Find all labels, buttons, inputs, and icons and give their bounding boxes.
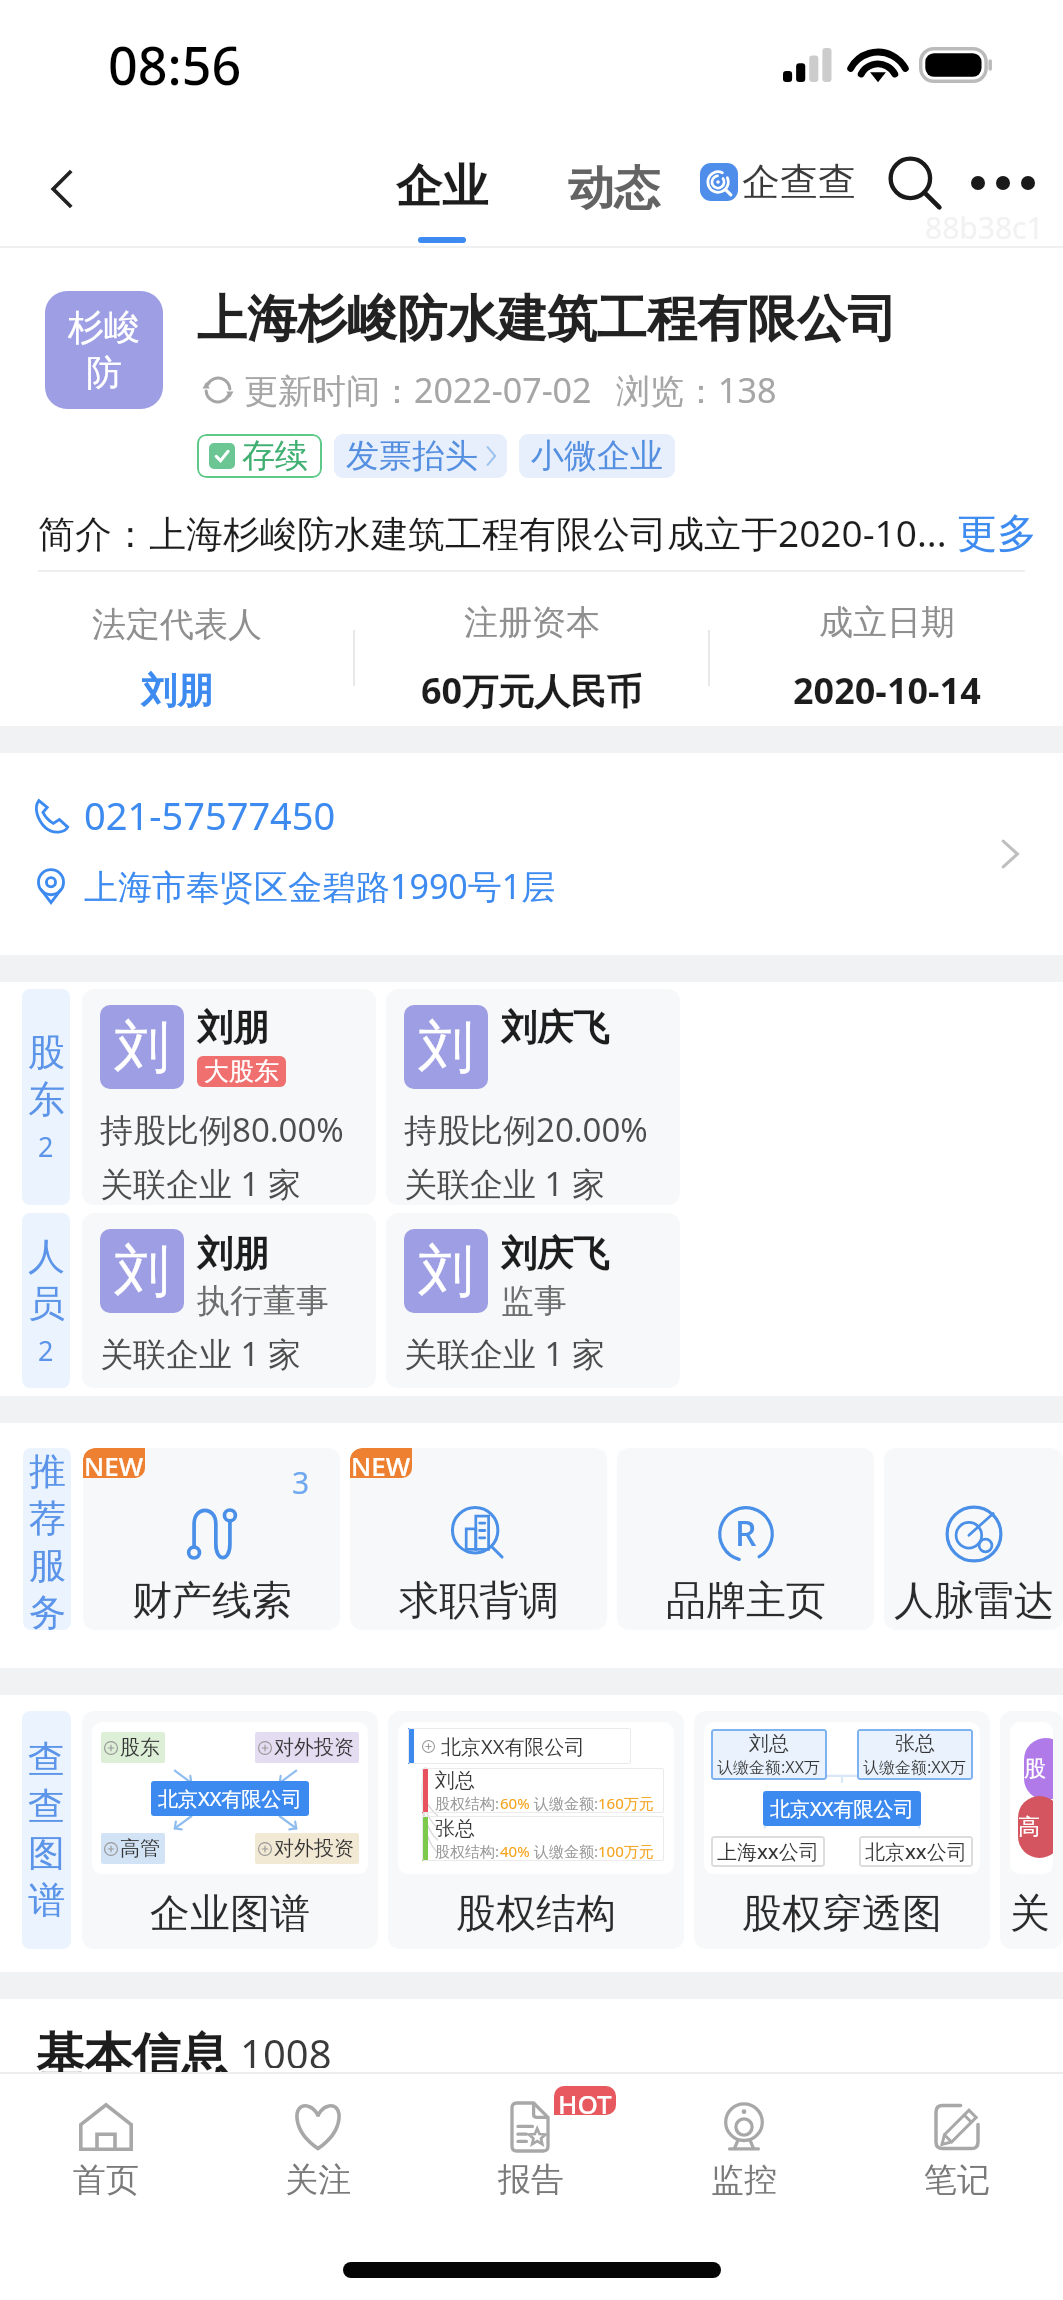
staticText: 股	[28, 1029, 65, 1076]
staticText: 更新时间：2022-07-02	[244, 367, 592, 413]
staticText: 注册资本	[464, 601, 600, 644]
staticText: 求职背调	[399, 1575, 559, 1625]
staticText: 企业	[396, 158, 488, 216]
staticText: 发票抬头	[346, 435, 478, 477]
button[interactable]: 存续	[197, 434, 322, 478]
button[interactable]: 小微企业	[519, 434, 675, 478]
staticText: 张总	[435, 1816, 475, 1841]
button[interactable]: More options	[958, 138, 1048, 228]
staticText: 服	[29, 1542, 66, 1589]
staticText: 刘庆飞	[501, 1231, 609, 1276]
staticText: 刘	[418, 1012, 474, 1083]
staticText: 对外投资	[274, 1836, 354, 1861]
staticText: 88b38c1	[925, 207, 1044, 248]
staticText: 企查查	[742, 158, 856, 206]
staticText: 160万元	[598, 1793, 654, 1813]
button[interactable]: 021-57577450	[0, 753, 1063, 955]
staticText: 2	[38, 1128, 54, 1165]
staticText: 小微企业	[531, 435, 663, 477]
staticText: 简介：上海杉峻防水建筑工程有限公司成立于2020-10...	[38, 507, 947, 558]
staticText: 股东	[1024, 1755, 1053, 1783]
staticText: 股东	[120, 1735, 160, 1760]
staticText: 对外投资	[274, 1735, 354, 1760]
staticText: 存续	[242, 435, 308, 477]
staticText: 认缴金额:XX万	[863, 1756, 967, 1778]
staticText: 3	[292, 1462, 310, 1503]
button[interactable]: 法定代表人	[0, 590, 353, 726]
staticText: 人	[28, 1233, 65, 1280]
button[interactable]: Back	[20, 147, 104, 231]
staticText: 员	[28, 1280, 65, 1327]
staticText: 刘	[114, 1236, 170, 1307]
staticText: 监控	[711, 2159, 777, 2201]
staticText: 关系图	[1010, 1888, 1053, 1938]
staticText: 大股东	[204, 1056, 279, 1087]
button[interactable]: 笔记	[850, 2074, 1063, 2232]
button[interactable]: 财产线索	[83, 1448, 340, 1630]
staticText: 刘朋	[197, 1231, 269, 1276]
staticText: 关联企业 1 家	[404, 1161, 606, 1205]
staticText: 图	[28, 1830, 65, 1877]
staticText: 高管	[1018, 1813, 1053, 1841]
button[interactable]: HOT	[424, 2074, 637, 2232]
staticText: 刘庆飞	[501, 1005, 609, 1050]
staticText: 杉峻	[68, 305, 140, 350]
staticText: 成立日期	[819, 601, 955, 644]
button[interactable]: 发票抬头	[334, 434, 507, 478]
staticText: 北京XX有限公司	[441, 1733, 585, 1760]
button[interactable]: 企查查	[700, 158, 856, 206]
staticText: 查	[28, 1783, 65, 1830]
staticText: 品牌主页	[666, 1575, 826, 1625]
staticText: NEW	[351, 1448, 411, 1478]
staticText: 2	[38, 1332, 54, 1369]
staticText: 谱	[28, 1877, 65, 1924]
staticText: 北京XX有限公司	[770, 1795, 914, 1822]
staticText: 刘总	[749, 1731, 789, 1756]
button[interactable]: 动态	[568, 160, 660, 218]
staticText: 首页	[73, 2159, 139, 2201]
staticText: 企业图谱	[150, 1888, 310, 1938]
staticText: 刘朋	[197, 1005, 269, 1050]
staticText: 关联企业 1 家	[100, 1161, 302, 1205]
button[interactable]: 监控	[637, 2074, 850, 2232]
staticText: 报告	[498, 2159, 564, 2201]
staticText: 021-57577450	[84, 789, 336, 841]
staticText: 股权结构:	[435, 1793, 500, 1813]
staticText: 股权穿透图	[742, 1888, 942, 1938]
staticText: 荐	[29, 1495, 66, 1542]
button[interactable]: 首页	[0, 2074, 212, 2232]
staticText: 浏览：138	[616, 367, 777, 413]
button[interactable]: 刘总	[694, 1711, 990, 1949]
staticText: 认缴金额:XX万	[717, 1756, 821, 1778]
button[interactable]: 成立日期	[710, 590, 1063, 726]
staticText: 2020-10-14	[793, 666, 981, 715]
staticText: 东	[28, 1076, 65, 1123]
staticText: 关联企业 1 家	[404, 1331, 606, 1376]
button[interactable]: 刘	[82, 1213, 376, 1388]
button[interactable]: 北京XX有限公司	[388, 1711, 684, 1949]
staticText: 人脉雷达	[894, 1575, 1054, 1625]
button[interactable]: 求职背调	[350, 1448, 607, 1630]
staticText: 推	[29, 1448, 66, 1495]
button[interactable]: 股东	[1000, 1711, 1063, 1949]
staticText: 监事	[501, 1280, 567, 1322]
button[interactable]: 更多	[947, 508, 1037, 558]
button[interactable]: 人脉雷达	[884, 1448, 1063, 1630]
button[interactable]: 刘	[82, 989, 376, 1205]
staticText: 北京XX有限公司	[158, 1785, 302, 1812]
staticText: 60万元人民币	[421, 666, 643, 715]
staticText: 查	[28, 1736, 65, 1783]
button[interactable]: 刘	[386, 989, 680, 1205]
button[interactable]: 企业	[396, 158, 488, 243]
staticText: 100万元	[598, 1841, 654, 1861]
button[interactable]: 股东	[82, 1711, 378, 1949]
staticText: 张总	[895, 1731, 935, 1756]
staticText: 北京xx公司	[865, 1838, 967, 1865]
staticText: 防	[86, 350, 122, 395]
button[interactable]: Search	[873, 141, 957, 225]
button[interactable]: 刘	[386, 1213, 680, 1388]
button[interactable]: 注册资本	[355, 590, 708, 726]
button[interactable]: 关注	[212, 2074, 424, 2232]
staticText: 刘朋	[141, 668, 213, 713]
button[interactable]: R	[617, 1448, 874, 1630]
